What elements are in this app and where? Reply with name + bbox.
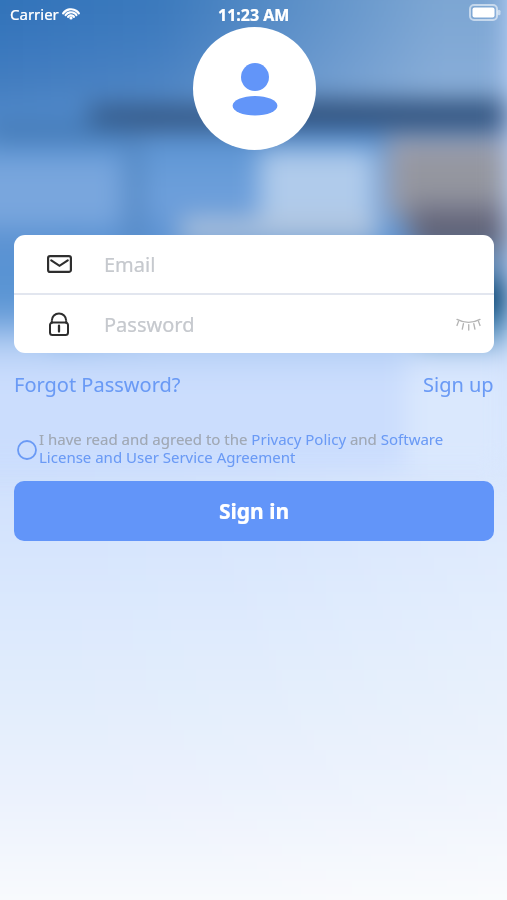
staticText: Forgot Password?	[14, 371, 181, 398]
button[interactable]: Password	[14, 295, 494, 353]
staticText: I have read and agreed to the Privacy Po…	[39, 429, 449, 468]
staticText: Carrier	[10, 4, 59, 24]
button[interactable]: Forgot Password?	[14, 371, 181, 398]
staticText: Email	[104, 251, 156, 278]
button[interactable]: Email	[14, 235, 494, 293]
button[interactable]: I have read and agreed to the Privacy Po…	[14, 429, 493, 468]
staticText: Sign in	[219, 497, 290, 526]
button[interactable]: Sign in	[14, 481, 494, 541]
button[interactable]: Sign up	[423, 371, 494, 398]
staticText: 11:23 AM	[218, 4, 290, 26]
staticText: Password	[104, 311, 195, 338]
button[interactable]: Show password	[456, 312, 480, 336]
staticText: Sign up	[423, 371, 494, 398]
